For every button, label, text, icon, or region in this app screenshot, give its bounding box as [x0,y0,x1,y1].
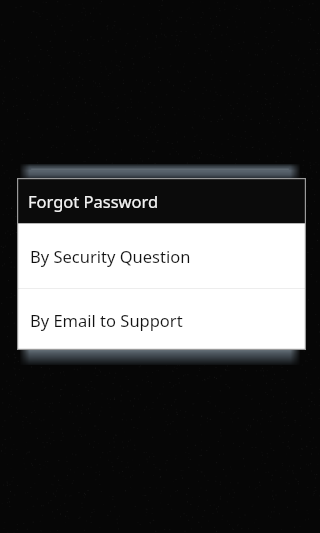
staticText: By Email to Support [30,309,183,331]
button[interactable]: By Email to Support [17,289,306,350]
staticText: By Security Question [30,245,191,267]
button[interactable]: By Security Question [17,224,306,288]
staticText: Forgot Password [28,190,159,212]
